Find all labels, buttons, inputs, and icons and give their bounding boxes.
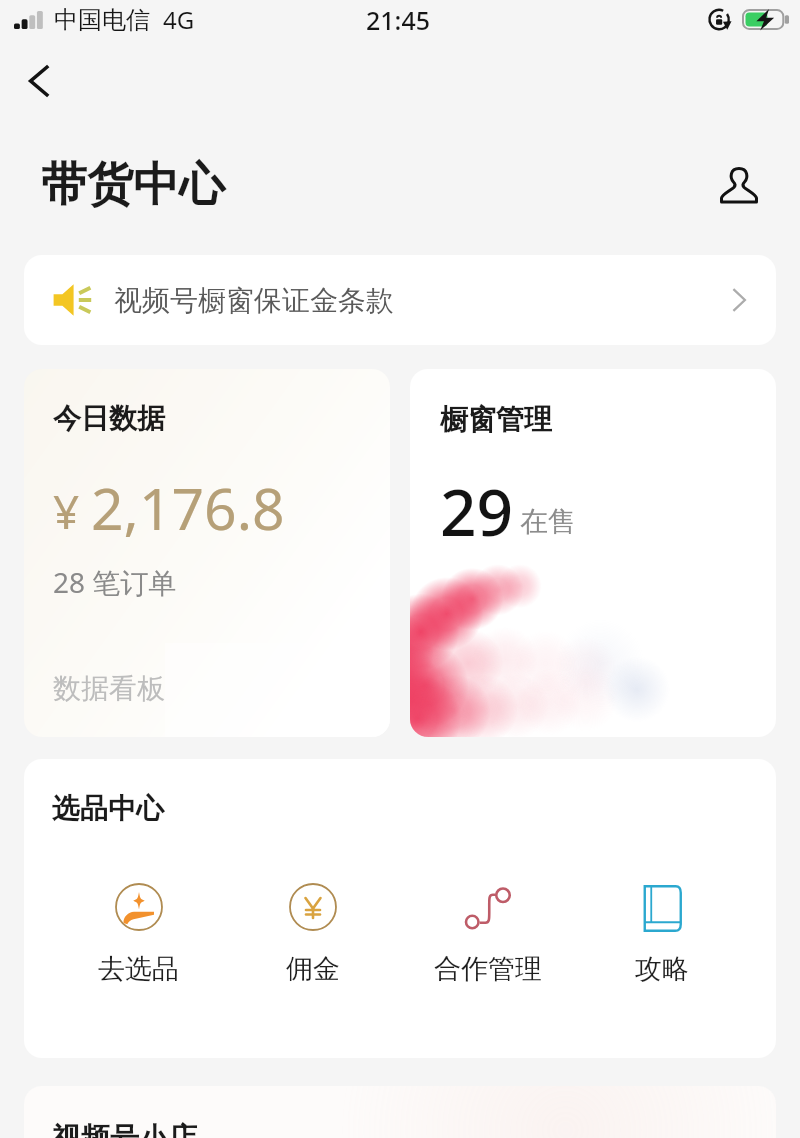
staticText: 佣金 — [286, 952, 340, 986]
button[interactable]: 攻略 — [575, 882, 748, 986]
staticText: 带货中心 — [41, 156, 225, 214]
button[interactable]: 视频号小店 — [24, 1086, 776, 1138]
staticText: 28 笔订单 — [53, 563, 177, 601]
staticText: 29 — [440, 468, 514, 555]
staticText: 21:45 — [366, 3, 431, 37]
button[interactable]: 合作管理 — [401, 882, 574, 986]
staticText: 今日数据 — [53, 401, 165, 436]
button[interactable]: 去选品 — [52, 882, 225, 986]
button[interactable]: Account — [712, 158, 766, 212]
staticText: 视频号橱窗保证金条款 — [114, 283, 394, 318]
staticText: 中国电信 — [54, 5, 150, 35]
button[interactable]: 橱窗管理 — [410, 369, 776, 737]
button[interactable]: 佣金 — [226, 882, 399, 986]
button[interactable]: 今日数据 — [24, 369, 390, 737]
staticText: 视频号小店 — [52, 1120, 197, 1138]
staticText: 去选品 — [98, 952, 179, 986]
button[interactable]: Back — [11, 53, 67, 109]
staticText: 数据看板 — [53, 671, 165, 706]
staticText: 4G — [163, 3, 195, 36]
staticText: 2,176.8 — [91, 469, 285, 547]
staticText: 合作管理 — [434, 952, 542, 986]
staticText: 橱窗管理 — [440, 402, 552, 437]
staticText: ¥ — [53, 480, 80, 543]
staticText: 攻略 — [635, 952, 689, 986]
staticText: 在售 — [520, 504, 576, 539]
staticText: 选品中心 — [52, 791, 164, 826]
button[interactable]: 视频号橱窗保证金条款 — [24, 255, 776, 345]
